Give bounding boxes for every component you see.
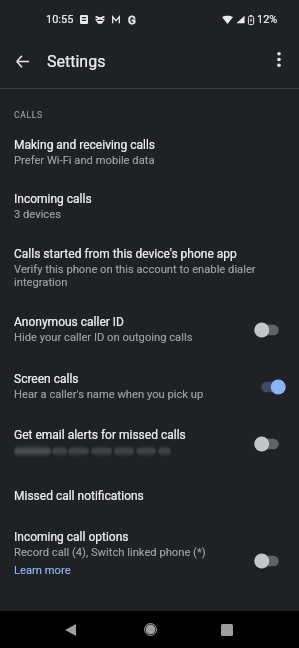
staticText: Incoming call options — [14, 530, 129, 544]
staticText: Incoming calls — [14, 192, 92, 206]
button[interactable]: Incoming call options — [0, 518, 299, 587]
button[interactable]: Get email alerts for missed calls — [0, 415, 299, 474]
staticText: Record call (4), Switch linked phone (*) — [14, 546, 206, 559]
button[interactable]: Off — [253, 432, 287, 456]
staticText: Screen calls — [14, 372, 79, 386]
button[interactable]: Anonymous caller ID — [0, 304, 299, 359]
staticText: CALLS — [14, 110, 43, 120]
button[interactable]: Recents — [207, 611, 247, 648]
button[interactable]: Back — [50, 611, 90, 648]
button[interactable]: Calls started from this device's phone a… — [0, 234, 299, 304]
staticText: Get email alerts for missed calls — [14, 428, 186, 442]
button[interactable]: Off — [253, 318, 287, 342]
staticText: Missed call notifications — [14, 489, 144, 503]
staticText: 10:55 — [46, 13, 74, 26]
staticText: Settings — [47, 52, 106, 71]
staticText: Hear a caller's name when you pick up — [14, 388, 204, 401]
button[interactable]: Home — [130, 611, 170, 648]
staticText: Verify this phone on this account to ena… — [14, 263, 287, 289]
button[interactable]: Missed call notifications — [0, 474, 299, 518]
staticText: 3 devices — [14, 208, 61, 221]
button[interactable]: More options — [259, 39, 299, 79]
staticText: G — [128, 13, 136, 26]
button[interactable]: Screen calls — [0, 359, 299, 415]
button[interactable]: On — [253, 375, 287, 399]
button[interactable]: Incoming calls — [0, 179, 299, 234]
staticText: Hide your caller ID on outgoing calls — [14, 331, 193, 344]
staticText: Anonymous caller ID — [14, 315, 124, 329]
button[interactable]: Navigate up — [0, 39, 44, 83]
button[interactable]: Off — [253, 549, 287, 573]
staticText: Calls started from this device's phone a… — [14, 247, 237, 261]
button[interactable]: Making and receiving calls — [0, 120, 299, 179]
staticText: Prefer Wi-Fi and mobile data — [14, 154, 155, 167]
staticText: Making and receiving calls — [14, 138, 156, 152]
button[interactable]: Learn more — [14, 564, 71, 577]
staticText: 12% — [257, 13, 278, 26]
